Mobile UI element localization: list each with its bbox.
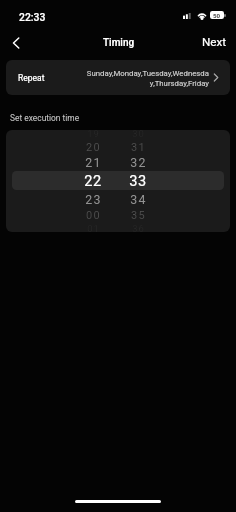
button[interactable]: Next <box>196 31 233 53</box>
staticText: 23 <box>85 192 102 207</box>
staticText: Next <box>202 35 227 49</box>
staticText: 50 <box>213 12 221 19</box>
staticText: 32 <box>130 155 147 170</box>
staticText: 00 <box>86 209 101 222</box>
staticText: y,Thursday,Friday <box>149 79 209 88</box>
staticText: 34 <box>130 192 147 207</box>
staticText: Sunday,Monday,Tuesday,Wednesda <box>86 69 209 78</box>
staticText: 31 <box>131 141 146 154</box>
staticText: 35 <box>131 209 146 222</box>
staticText: 33 <box>129 172 147 189</box>
button[interactable]: Back <box>4 31 28 55</box>
staticText: 22 <box>84 172 102 189</box>
staticText: Timing <box>103 37 135 49</box>
button[interactable]: Repeat <box>6 60 230 95</box>
staticText: Set execution time <box>10 113 80 123</box>
staticText: 22:33 <box>19 11 46 23</box>
staticText: 20 <box>86 141 101 154</box>
staticText: 21 <box>85 155 102 170</box>
staticText: Repeat <box>18 73 45 83</box>
